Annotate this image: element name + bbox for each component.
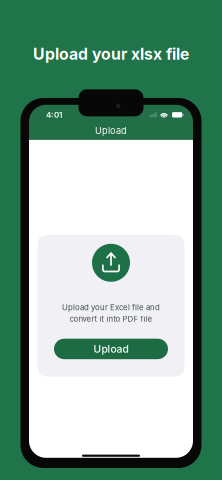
staticText: Upload your Excel file and	[62, 303, 160, 312]
button[interactable]: Upload	[54, 339, 168, 359]
staticText: convert it into PDF file	[69, 314, 152, 324]
staticText: 4:01	[46, 110, 62, 120]
staticText: Upload your xlsx file	[33, 44, 189, 63]
staticText: Upload	[95, 125, 127, 136]
staticText: Upload	[93, 343, 128, 355]
